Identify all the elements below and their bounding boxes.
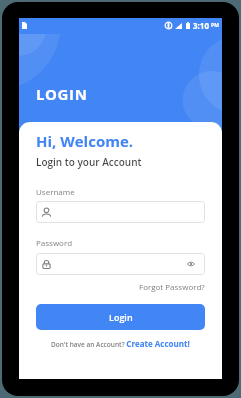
staticText: PM [211, 22, 219, 29]
button[interactable]: Password field [36, 253, 205, 275]
staticText: 3:10 [193, 20, 210, 31]
staticText: Login [109, 311, 133, 323]
staticText: Password [36, 237, 73, 248]
button[interactable]: Username field [36, 201, 205, 223]
button[interactable]: Don't have an Account? Create Account! [51, 338, 190, 349]
staticText: Login to your Account [36, 155, 142, 169]
staticText: LOGIN [36, 84, 88, 104]
staticText: Hi, Welcome. [36, 131, 134, 151]
button[interactable]: Forgot Password? [139, 281, 205, 292]
button[interactable]: Show password [187, 261, 195, 267]
staticText: Username [36, 186, 75, 197]
button[interactable]: Login [36, 304, 205, 330]
